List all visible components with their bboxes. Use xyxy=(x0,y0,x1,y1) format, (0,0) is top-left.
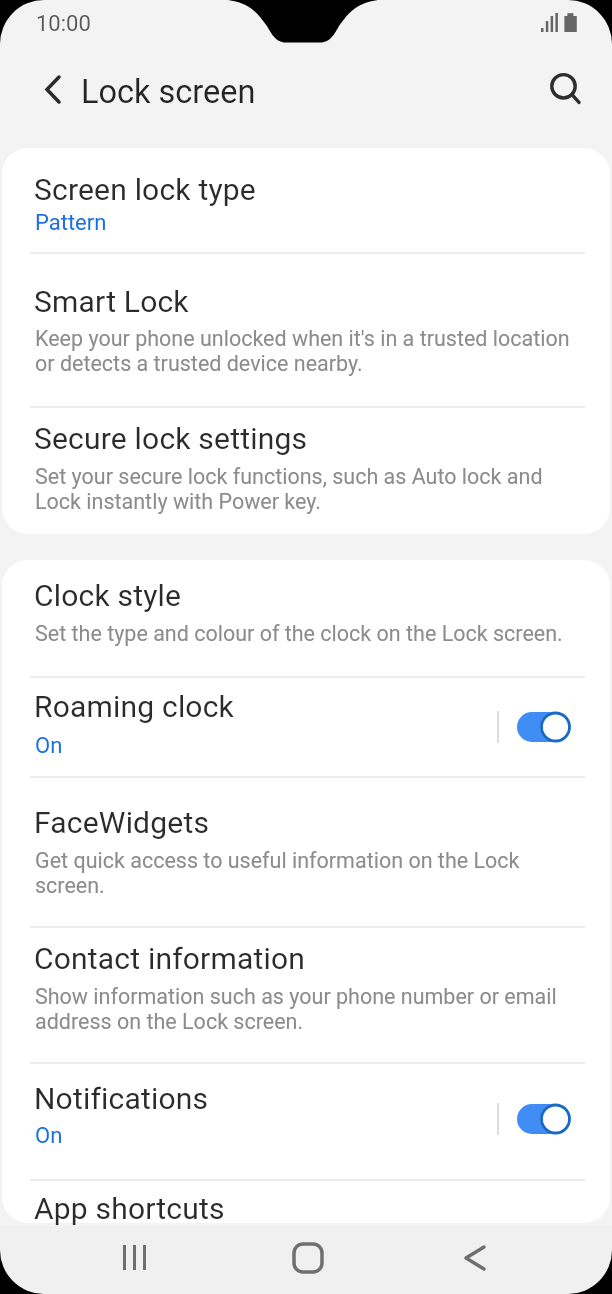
button[interactable] xyxy=(452,1238,500,1282)
staticText: Lock screen xyxy=(81,73,256,111)
button[interactable] xyxy=(2,678,610,777)
staticText: Set your secure lock functions, such as … xyxy=(35,464,543,514)
staticText: Show information such as your phone numb… xyxy=(35,984,557,1034)
staticText: Contact information xyxy=(34,941,306,976)
staticText: Pattern xyxy=(35,210,107,236)
button[interactable] xyxy=(284,1238,332,1282)
staticText: Set the type and colour of the clock on … xyxy=(35,621,563,646)
button[interactable] xyxy=(28,68,68,108)
button[interactable] xyxy=(2,928,610,1062)
button[interactable] xyxy=(517,712,575,744)
staticText: Keep your phone unlocked when it's in a … xyxy=(35,326,570,376)
button[interactable] xyxy=(538,62,586,110)
staticText: 10:00 xyxy=(36,11,91,37)
button[interactable] xyxy=(2,408,610,534)
staticText: On xyxy=(35,1123,63,1149)
staticText: App shortcuts xyxy=(34,1191,225,1226)
staticText: Smart Lock xyxy=(34,284,189,319)
button[interactable] xyxy=(2,779,610,926)
button[interactable] xyxy=(2,1181,610,1223)
staticText: Notifications xyxy=(34,1081,209,1116)
button[interactable] xyxy=(2,560,610,676)
staticText: FaceWidgets xyxy=(34,805,210,840)
staticText: Get quick access to useful information o… xyxy=(35,848,520,898)
button[interactable] xyxy=(2,254,610,406)
staticText: Secure lock settings xyxy=(34,421,308,456)
staticText: On xyxy=(35,733,63,759)
staticText: Screen lock type xyxy=(34,172,256,207)
staticText: Clock style xyxy=(34,578,182,613)
button[interactable] xyxy=(2,148,610,252)
button[interactable] xyxy=(2,1064,610,1179)
staticText: Roaming clock xyxy=(34,689,234,724)
button[interactable] xyxy=(517,1104,575,1136)
button[interactable] xyxy=(112,1238,160,1282)
